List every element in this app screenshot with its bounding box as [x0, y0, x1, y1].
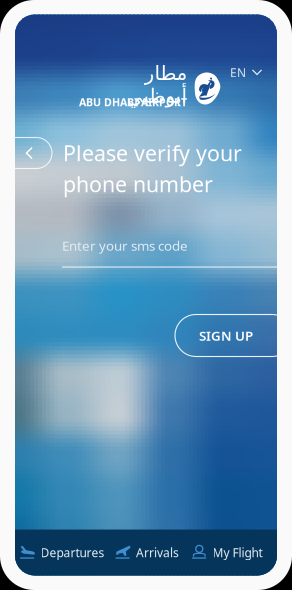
button[interactable]: SIGN UP	[175, 314, 292, 356]
staticText: EN	[230, 64, 246, 80]
staticText: Departures	[40, 544, 104, 560]
staticText: phone number	[63, 170, 213, 198]
staticText: Please verify your	[63, 139, 242, 167]
button[interactable]: My Flight	[185, 530, 269, 574]
staticText: Enter your sms code	[62, 237, 188, 254]
staticText: My Flight	[212, 544, 262, 560]
staticText: Arrivals	[136, 544, 179, 560]
button[interactable]: Departures	[15, 530, 109, 574]
button[interactable]: Language: English	[230, 59, 276, 85]
button[interactable]: Arrivals	[109, 530, 185, 574]
button[interactable]: Back	[0, 137, 52, 168]
staticText: مطار أبوظبي	[126, 62, 187, 107]
staticText: SIGN UP	[199, 327, 253, 344]
staticText: ABU DHABI AIRPORT	[79, 95, 187, 109]
